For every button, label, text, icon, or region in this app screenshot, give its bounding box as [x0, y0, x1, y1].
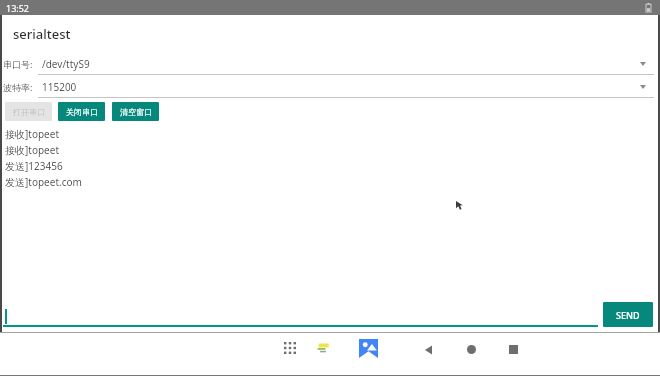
staticText: /dev/ttyS9 — [42, 57, 90, 71]
button[interactable]: Gallery — [355, 335, 381, 361]
staticText: serialtest — [13, 25, 71, 43]
button[interactable]: SEND — [603, 302, 653, 327]
staticText: 115200 — [42, 80, 77, 94]
staticText: 接收]topeet — [5, 143, 59, 157]
button[interactable] — [3, 301, 598, 327]
button[interactable]: Notes app — [313, 337, 334, 358]
staticText: 发送]topeet.com — [5, 175, 82, 189]
button[interactable]: All apps — [279, 337, 300, 358]
staticText: 打开串口 — [13, 107, 45, 117]
button[interactable]: Home — [461, 339, 482, 360]
button[interactable]: 打开串口 — [5, 102, 52, 121]
button[interactable]: Back — [418, 339, 439, 360]
staticText: 接收]topeet — [5, 127, 59, 141]
staticText: 关闭串口 — [66, 107, 98, 117]
button[interactable]: 波特率: — [0, 75, 660, 98]
staticText: SEND — [616, 309, 640, 321]
button[interactable]: 清空窗口 — [112, 102, 159, 121]
staticText: 清空窗口 — [120, 107, 152, 117]
staticText: 发送]123456 — [5, 159, 63, 173]
staticText: 串口号: — [3, 58, 33, 70]
other: Battery — [646, 3, 651, 12]
button[interactable]: 串口号: — [0, 52, 660, 75]
staticText: 13:52 — [6, 2, 30, 14]
staticText: 波特率: — [3, 81, 33, 93]
button[interactable]: 关闭串口 — [58, 102, 105, 121]
button[interactable]: Recents — [503, 339, 524, 360]
